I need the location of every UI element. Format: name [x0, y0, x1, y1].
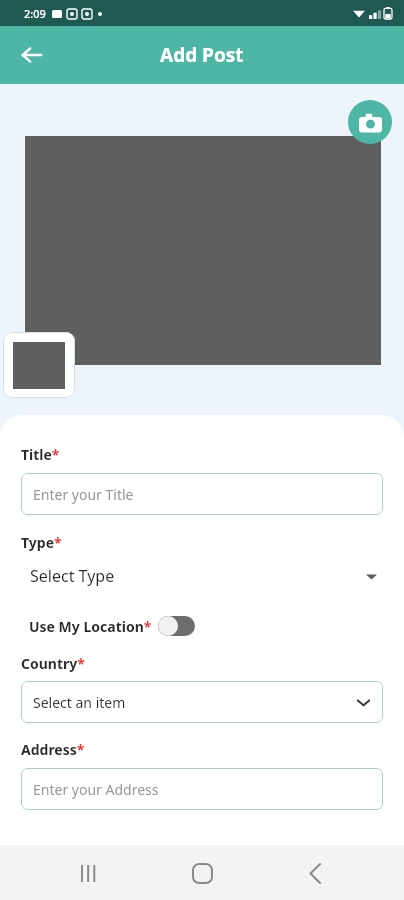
button[interactable]: Selected photo thumbnail: [3, 332, 75, 398]
button[interactable]: Select Type: [21, 556, 383, 596]
button[interactable]: Back: [291, 849, 339, 897]
button[interactable]: Take photo: [348, 100, 392, 144]
staticText: Country*: [21, 654, 85, 673]
staticText: Select Type: [30, 565, 115, 587]
staticText: Title*: [21, 445, 60, 464]
button[interactable]: Recents: [65, 849, 113, 897]
button[interactable]: Home: [178, 849, 226, 897]
staticText: 2:09: [24, 6, 46, 21]
staticText: Address*: [21, 740, 85, 759]
staticText: Select an item: [33, 693, 126, 712]
staticText: Enter your Title: [33, 485, 134, 504]
staticText: Use My Location*: [29, 617, 152, 636]
button[interactable]: Enter your Title: [21, 473, 383, 515]
button[interactable]: Enter your Address: [21, 768, 383, 810]
button[interactable]: Select an item: [21, 681, 383, 723]
staticText: Add Post: [160, 42, 244, 68]
staticText: Type*: [21, 533, 62, 552]
button[interactable]: Back: [10, 33, 54, 77]
button[interactable]: Use My Location*: [21, 614, 199, 638]
staticText: Enter your Address: [33, 780, 159, 799]
